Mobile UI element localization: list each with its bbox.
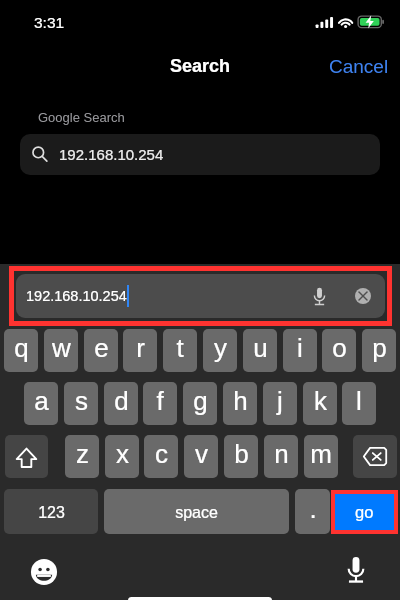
staticText: u (253, 333, 268, 362)
staticText: q (14, 333, 29, 362)
button[interactable]: k (303, 382, 337, 425)
staticText: Google Search (38, 110, 125, 125)
staticText: 123 (38, 504, 65, 522)
button[interactable]: Clear text (355, 288, 371, 304)
staticText: x (116, 439, 129, 468)
button[interactable]: Shift (5, 435, 48, 478)
staticText: a (34, 386, 49, 415)
staticText: g (193, 386, 208, 415)
staticText: w (52, 333, 71, 362)
button[interactable]: d (104, 382, 138, 425)
button[interactable]: a (24, 382, 58, 425)
staticText: r (136, 333, 145, 362)
staticText: b (234, 439, 249, 468)
staticText: m (310, 439, 332, 468)
staticText: o (332, 333, 347, 362)
button[interactable]: 192.168.10.254 (20, 134, 380, 175)
button[interactable]: m (304, 435, 338, 478)
button[interactable]: n (264, 435, 298, 478)
button[interactable]: j (263, 382, 297, 425)
staticText: Search (170, 56, 231, 76)
button[interactable]: f (143, 382, 177, 425)
staticText: d (114, 386, 129, 415)
button[interactable]: h (223, 382, 257, 425)
button[interactable]: Voice input (310, 287, 329, 306)
button[interactable]: p (362, 329, 396, 372)
button[interactable]: e (84, 329, 118, 372)
staticText: go (355, 503, 374, 521)
staticText: 192.168.10.254 (59, 146, 164, 163)
button[interactable]: v (184, 435, 218, 478)
staticText: z (76, 439, 89, 468)
staticText: e (94, 333, 109, 362)
button[interactable]: g (183, 382, 217, 425)
button[interactable]: l (342, 382, 376, 425)
staticText: n (274, 439, 289, 468)
button[interactable]: . (295, 489, 330, 534)
button[interactable]: t (163, 329, 197, 372)
button[interactable]: c (144, 435, 178, 478)
button[interactable]: z (65, 435, 99, 478)
staticText: s (75, 386, 88, 415)
staticText: c (155, 439, 168, 468)
button[interactable]: go (335, 494, 394, 530)
staticText: v (195, 439, 208, 468)
button[interactable]: y (203, 329, 237, 372)
button[interactable]: r (123, 329, 157, 372)
button[interactable]: Emoji (29, 557, 59, 587)
button[interactable]: space (104, 489, 289, 534)
staticText: f (156, 386, 164, 415)
button[interactable]: s (64, 382, 98, 425)
button[interactable]: b (224, 435, 258, 478)
staticText: Cancel (329, 56, 389, 76)
button[interactable]: 123 (4, 489, 98, 534)
button[interactable]: 192.168.10.254 (16, 274, 385, 318)
button[interactable]: o (322, 329, 356, 372)
staticText: p (372, 333, 387, 362)
button[interactable]: i (283, 329, 317, 372)
button[interactable]: Cancel (311, 52, 400, 80)
staticText: y (214, 333, 227, 362)
staticText: i (297, 333, 303, 362)
button[interactable]: Backspace (353, 435, 397, 478)
staticText: space (175, 504, 218, 522)
button[interactable]: Dictation (341, 555, 371, 585)
staticText: k (314, 386, 327, 415)
staticText: 192.168.10.254 (26, 288, 127, 304)
staticText: j (277, 386, 283, 415)
button[interactable]: u (243, 329, 277, 372)
staticText: h (233, 386, 248, 415)
staticText: . (309, 494, 317, 523)
button[interactable]: w (44, 329, 78, 372)
button[interactable]: q (4, 329, 38, 372)
staticText: 3:31 (34, 14, 65, 31)
staticText: t (176, 333, 184, 362)
button[interactable]: x (105, 435, 139, 478)
staticText: l (356, 386, 362, 415)
